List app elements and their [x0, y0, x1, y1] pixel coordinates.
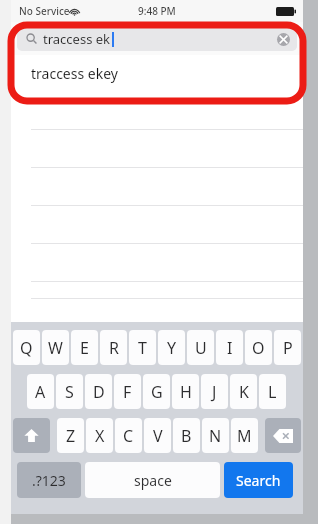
staticText: 9:48 PM — [138, 4, 176, 18]
staticText: H — [180, 381, 192, 403]
button[interactable]: Y — [158, 330, 185, 365]
button[interactable]: X — [86, 418, 113, 453]
staticText: A — [35, 381, 46, 403]
staticText: I — [227, 337, 233, 359]
button[interactable]: M — [231, 418, 258, 453]
button[interactable]: C — [115, 418, 142, 453]
button[interactable]: I — [216, 330, 243, 365]
staticText: No Service — [19, 4, 70, 18]
button[interactable]: L — [259, 374, 286, 409]
button[interactable]: P — [274, 330, 301, 365]
staticText: Q — [20, 337, 33, 359]
button[interactable]: S — [56, 374, 83, 409]
button[interactable]: U — [187, 330, 214, 365]
staticText: E — [80, 337, 89, 359]
button[interactable] — [31, 130, 303, 168]
button[interactable]: Shift — [13, 418, 50, 453]
button[interactable]: traccess ek — [17, 26, 297, 51]
button[interactable]: G — [143, 374, 170, 409]
staticText: traccess ekey — [31, 64, 118, 83]
staticText: Search — [236, 471, 281, 490]
staticText: W — [48, 337, 63, 359]
button[interactable]: Q — [13, 330, 40, 365]
staticText: J — [212, 381, 217, 403]
staticText: P — [283, 337, 293, 359]
button[interactable]: K — [230, 374, 257, 409]
staticText: B — [181, 425, 192, 447]
staticText: O — [252, 337, 265, 359]
button[interactable]: V — [144, 418, 171, 453]
staticText: C — [123, 425, 134, 447]
button[interactable]: O — [245, 330, 272, 365]
button[interactable]: J — [201, 374, 228, 409]
button[interactable] — [31, 168, 303, 206]
staticText: F — [123, 381, 132, 403]
staticText: U — [195, 337, 207, 359]
staticText: D — [93, 381, 105, 403]
staticText: N — [209, 425, 222, 447]
button[interactable]: Clear text — [275, 31, 291, 47]
staticText: L — [268, 381, 277, 403]
button[interactable]: E — [71, 330, 98, 365]
button[interactable]: Backspace — [265, 418, 301, 453]
staticText: space — [134, 471, 172, 490]
button[interactable]: traccess ekey — [11, 55, 303, 92]
button[interactable]: T — [129, 330, 156, 365]
button[interactable] — [31, 92, 303, 130]
button[interactable]: H — [172, 374, 199, 409]
staticText: V — [153, 425, 163, 447]
button[interactable] — [31, 244, 303, 282]
staticText: Z — [66, 425, 76, 447]
staticText: traccess ek — [43, 30, 111, 48]
button[interactable] — [31, 206, 303, 244]
button[interactable]: Z — [57, 418, 84, 453]
button[interactable]: Search — [224, 462, 293, 498]
staticText: G — [151, 381, 163, 403]
button[interactable]: R — [100, 330, 127, 365]
button[interactable] — [31, 282, 303, 299]
button[interactable]: A — [27, 374, 54, 409]
button[interactable]: F — [114, 374, 141, 409]
button[interactable]: .?123 — [17, 462, 81, 498]
button[interactable]: space — [85, 462, 220, 498]
staticText: T — [138, 337, 147, 359]
staticText: Y — [167, 337, 177, 359]
staticText: R — [109, 337, 119, 359]
staticText: K — [239, 381, 249, 403]
button[interactable]: N — [202, 418, 229, 453]
staticText: X — [95, 425, 105, 447]
button[interactable]: B — [173, 418, 200, 453]
staticText: S — [65, 381, 74, 403]
button[interactable]: W — [42, 330, 69, 365]
staticText: M — [237, 425, 252, 447]
staticText: .?123 — [32, 471, 66, 490]
button[interactable]: D — [85, 374, 112, 409]
